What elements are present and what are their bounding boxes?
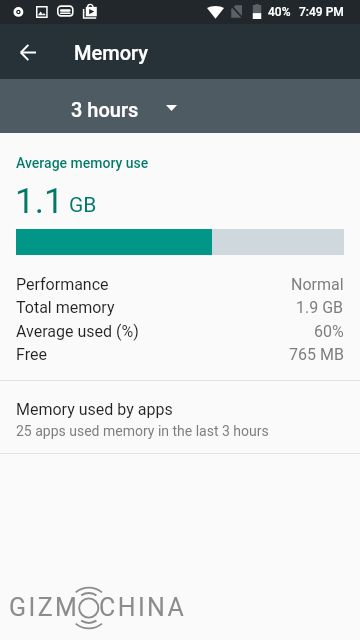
staticText: CHINA [99,593,187,622]
staticText: 765 MB [289,345,344,364]
staticText: Average used (%) [16,322,139,341]
staticText: 40% [268,5,291,19]
staticText: Memory used by apps [16,400,173,419]
staticText: Free [16,345,47,364]
staticText: Memory [74,41,148,64]
button[interactable]: Memory used by apps [0,381,360,453]
button[interactable]: Navigate up [10,34,46,70]
staticText: Total memory [16,298,115,317]
staticText: GIZM [9,593,80,622]
staticText: 25 apps used memory in the last 3 hours [16,423,269,439]
staticText: Performance [16,275,109,294]
staticText: 3 hours [71,98,139,121]
staticText: 1.9 GB [296,298,344,317]
staticText: 7:49 PM [299,5,344,19]
staticText: Average memory use [16,155,149,171]
button[interactable]: 3 hours [0,79,360,133]
staticText: GB [69,193,97,218]
staticText: 1.1 [15,181,64,222]
staticText: 60% [314,322,344,341]
staticText: Normal [291,275,344,294]
